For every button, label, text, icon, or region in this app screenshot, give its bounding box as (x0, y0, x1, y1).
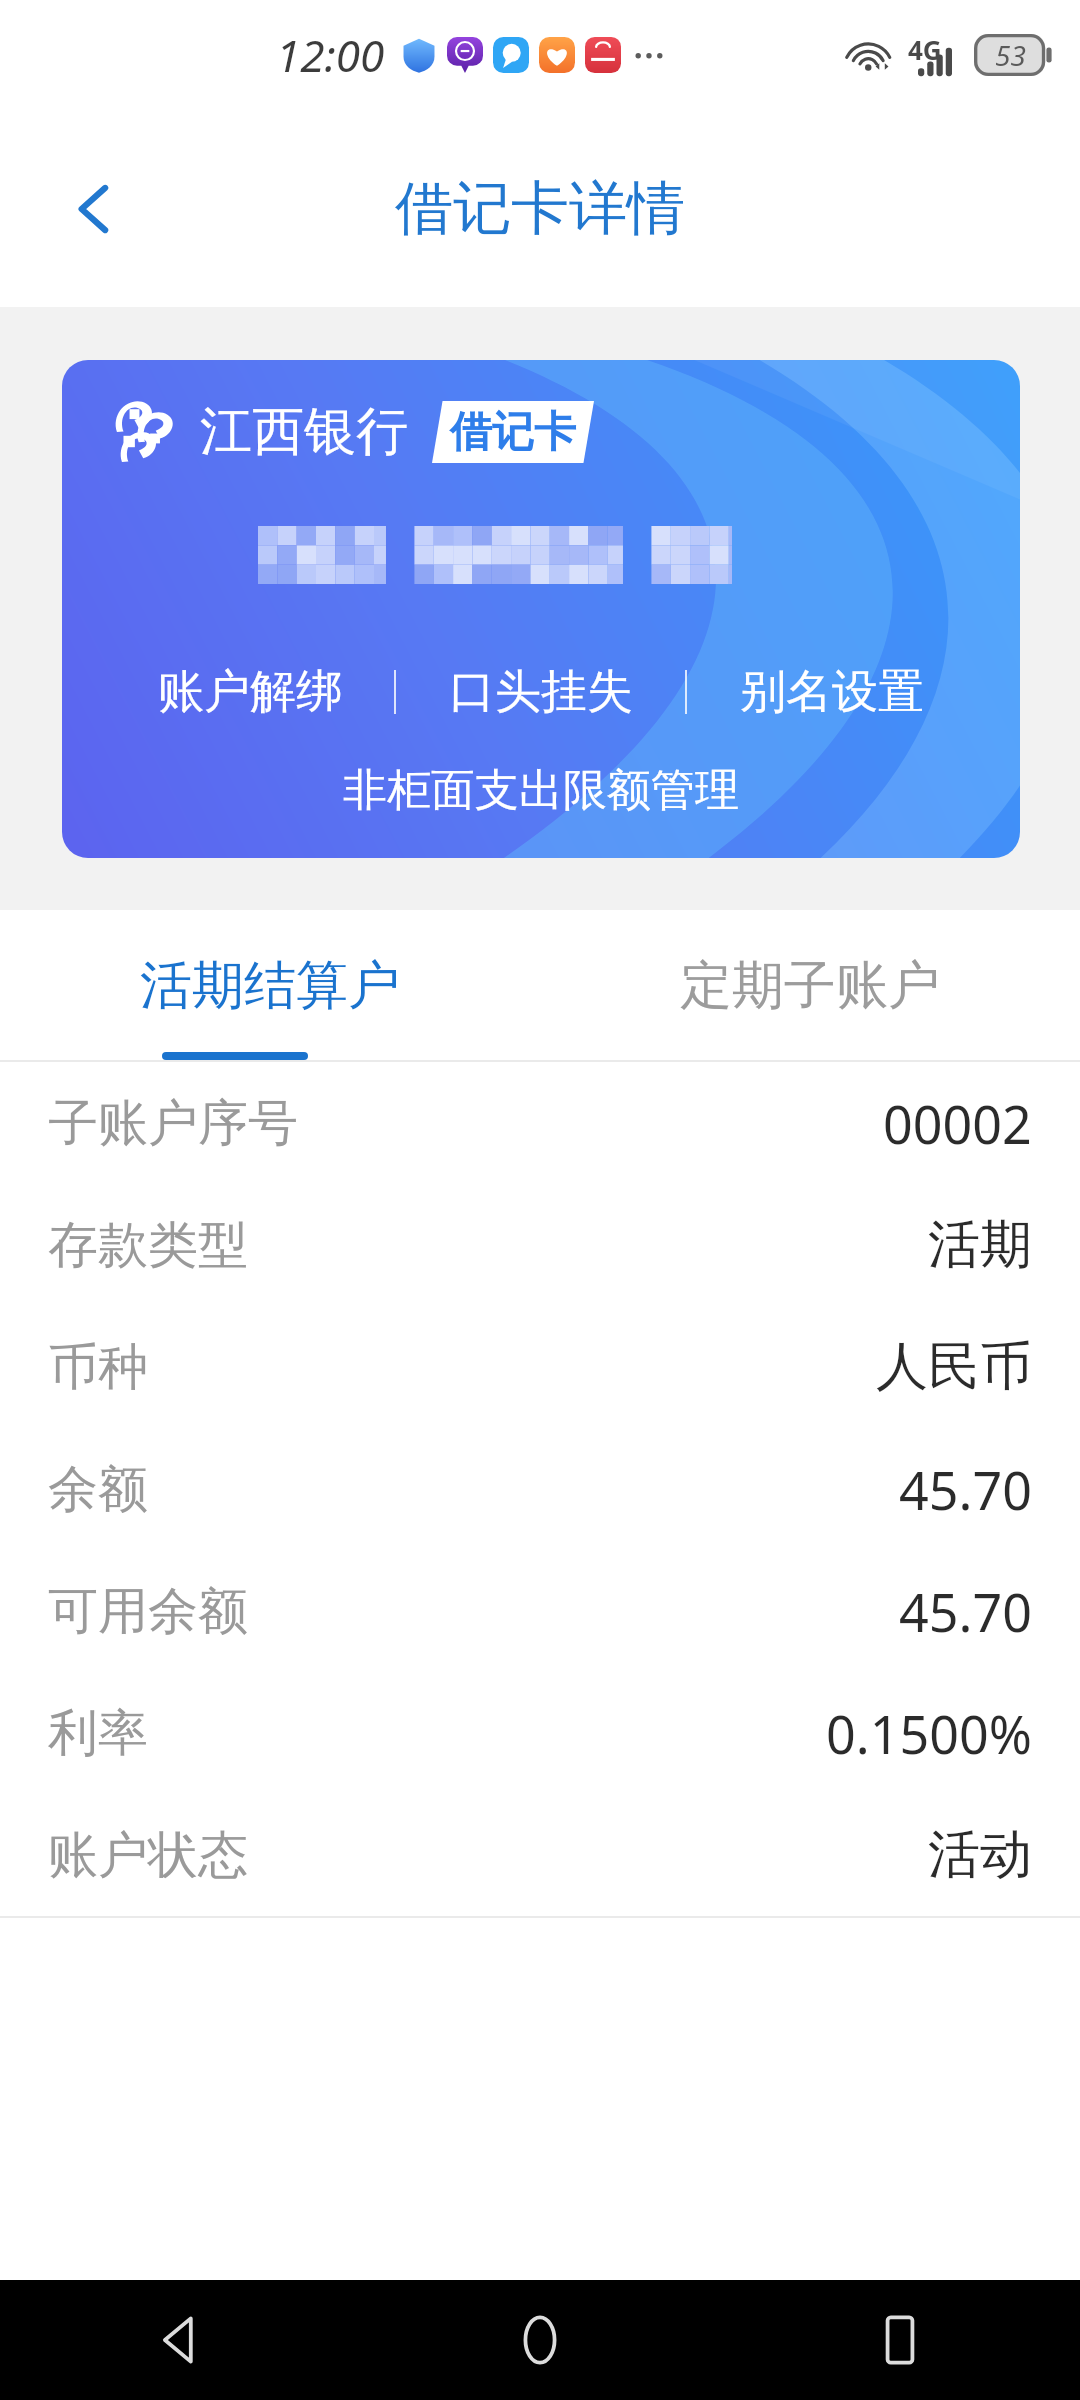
button[interactable]: 可用余额 (0, 1550, 1080, 1672)
staticText: 借记卡 (450, 406, 576, 459)
button[interactable]: 账户解绑 (106, 652, 394, 732)
button[interactable]: Back (125, 2285, 235, 2395)
button[interactable]: Back (42, 157, 146, 261)
staticText: 非柜面支出限额管理 (343, 763, 739, 818)
staticText: 活期 (928, 1212, 1032, 1278)
staticText: 45.70 (899, 1576, 1032, 1647)
staticText: 江西银行 (200, 399, 408, 465)
staticText: 人民币 (876, 1334, 1032, 1400)
staticText: 币种 (48, 1336, 148, 1399)
staticText: 45.70 (899, 1454, 1032, 1525)
staticText: 00002 (883, 1088, 1032, 1159)
staticText: 53 (995, 36, 1026, 74)
staticText: 口头挂失 (449, 663, 633, 721)
button[interactable]: 存款类型 (0, 1184, 1080, 1306)
button[interactable]: 定期子账户 (540, 910, 1080, 1062)
staticText: 定期子账户 (680, 953, 940, 1019)
button[interactable]: 账户状态 (0, 1794, 1080, 1916)
staticText: 存款类型 (48, 1214, 248, 1277)
button[interactable]: 口头挂失 (396, 652, 685, 732)
button[interactable]: 币种 (0, 1306, 1080, 1428)
button[interactable]: 子账户序号 (0, 1062, 1080, 1184)
button[interactable]: 非柜面支出限额管理 (62, 744, 1020, 836)
button[interactable]: Recents (845, 2285, 955, 2395)
staticText: 活动 (928, 1822, 1032, 1888)
button[interactable]: 利率 (0, 1672, 1080, 1794)
staticText: 子账户序号 (48, 1092, 298, 1155)
staticText: 4G (908, 32, 942, 67)
button[interactable]: 活期结算户 (0, 910, 540, 1062)
staticText: 别名设置 (740, 663, 924, 721)
button[interactable]: 别名设置 (687, 652, 976, 732)
staticText: 利率 (48, 1702, 148, 1765)
button[interactable]: 余额 (0, 1428, 1080, 1550)
staticText: 账户解绑 (158, 663, 342, 721)
button[interactable]: Home (485, 2285, 595, 2395)
staticText: 活期结算户 (140, 953, 400, 1019)
staticText: 0.1500% (826, 1698, 1032, 1769)
staticText: 借记卡详情 (395, 172, 685, 245)
button[interactable]: 江西银行 (62, 360, 1020, 858)
staticText: 12:00 (276, 25, 385, 85)
staticText: 余额 (48, 1458, 148, 1521)
staticText: 账户状态 (48, 1824, 248, 1887)
staticText: 可用余额 (48, 1580, 248, 1643)
